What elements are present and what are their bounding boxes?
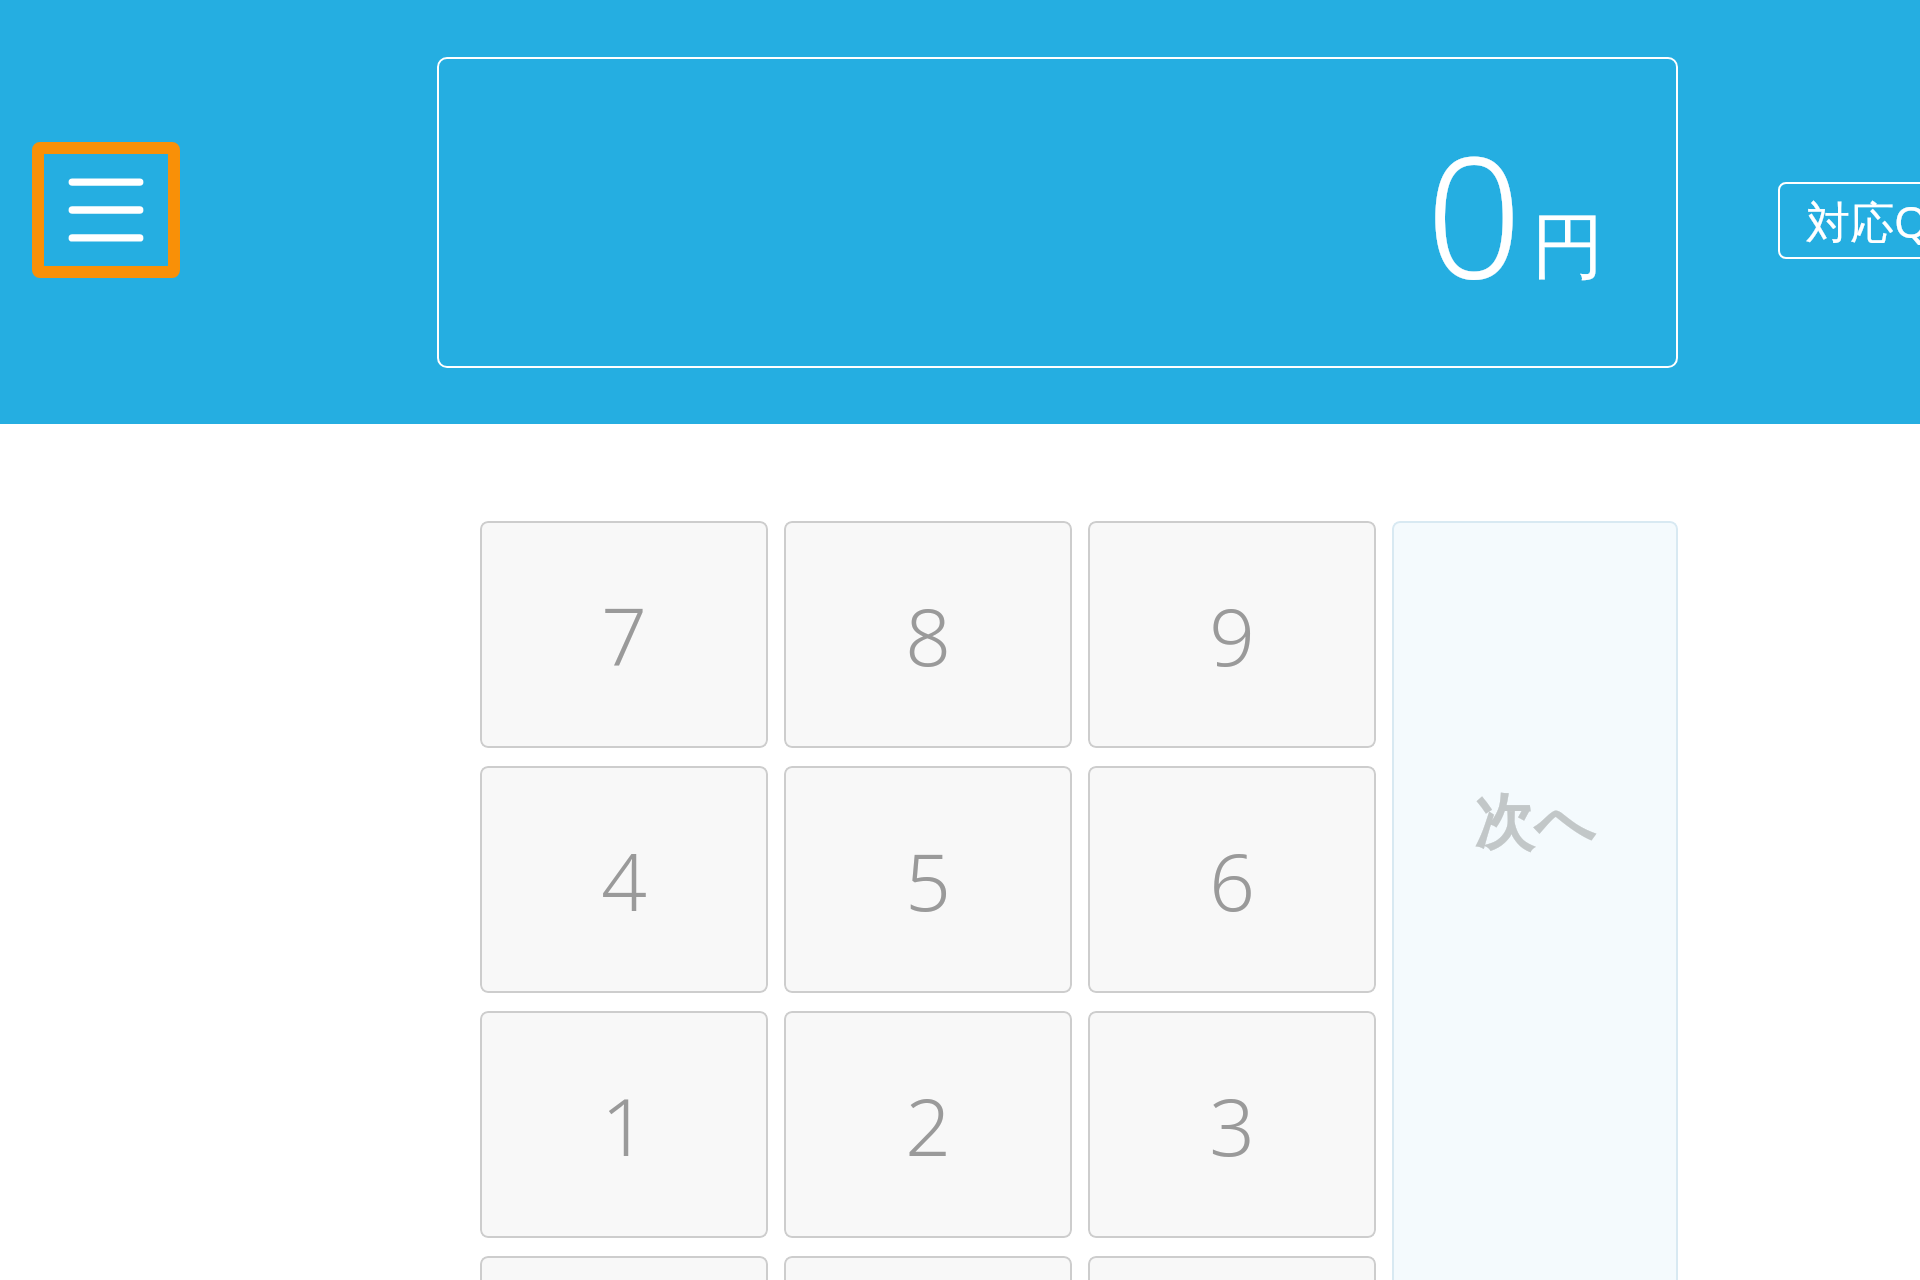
button[interactable]: ← xyxy=(1088,1256,1376,1280)
button[interactable]: 0 xyxy=(437,57,1678,368)
button[interactable]: 8 xyxy=(784,521,1072,748)
staticText: 0 xyxy=(1426,98,1522,327)
button[interactable]: 1 xyxy=(480,1011,768,1238)
button[interactable]: Menu xyxy=(32,142,180,278)
staticText: 3 xyxy=(1209,1070,1255,1179)
button[interactable]: 4 xyxy=(480,766,768,993)
staticText: 6 xyxy=(1209,825,1255,934)
staticText: 4 xyxy=(601,825,647,934)
button[interactable]: 3 xyxy=(1088,1011,1376,1238)
staticText: 7 xyxy=(601,580,647,689)
button[interactable]: 0 xyxy=(480,1256,768,1280)
staticText: 対応QR xyxy=(1806,191,1920,251)
staticText: 9 xyxy=(1209,580,1255,689)
button[interactable]: 2 xyxy=(784,1011,1072,1238)
button[interactable]: 00 xyxy=(784,1256,1072,1280)
staticText: 1 xyxy=(601,1070,647,1179)
button[interactable]: 対応QR xyxy=(1778,182,1920,259)
staticText: 2 xyxy=(905,1070,951,1179)
button[interactable]: 5 xyxy=(784,766,1072,993)
button[interactable]: 7 xyxy=(480,521,768,748)
staticText: 5 xyxy=(905,825,951,934)
button[interactable]: 6 xyxy=(1088,766,1376,993)
button[interactable]: 9 xyxy=(1088,521,1376,748)
staticText: 次へ xyxy=(1474,785,1596,861)
staticText: 8 xyxy=(905,580,951,689)
staticText: 円 xyxy=(1532,202,1604,293)
button[interactable]: 次へ xyxy=(1392,521,1678,1280)
